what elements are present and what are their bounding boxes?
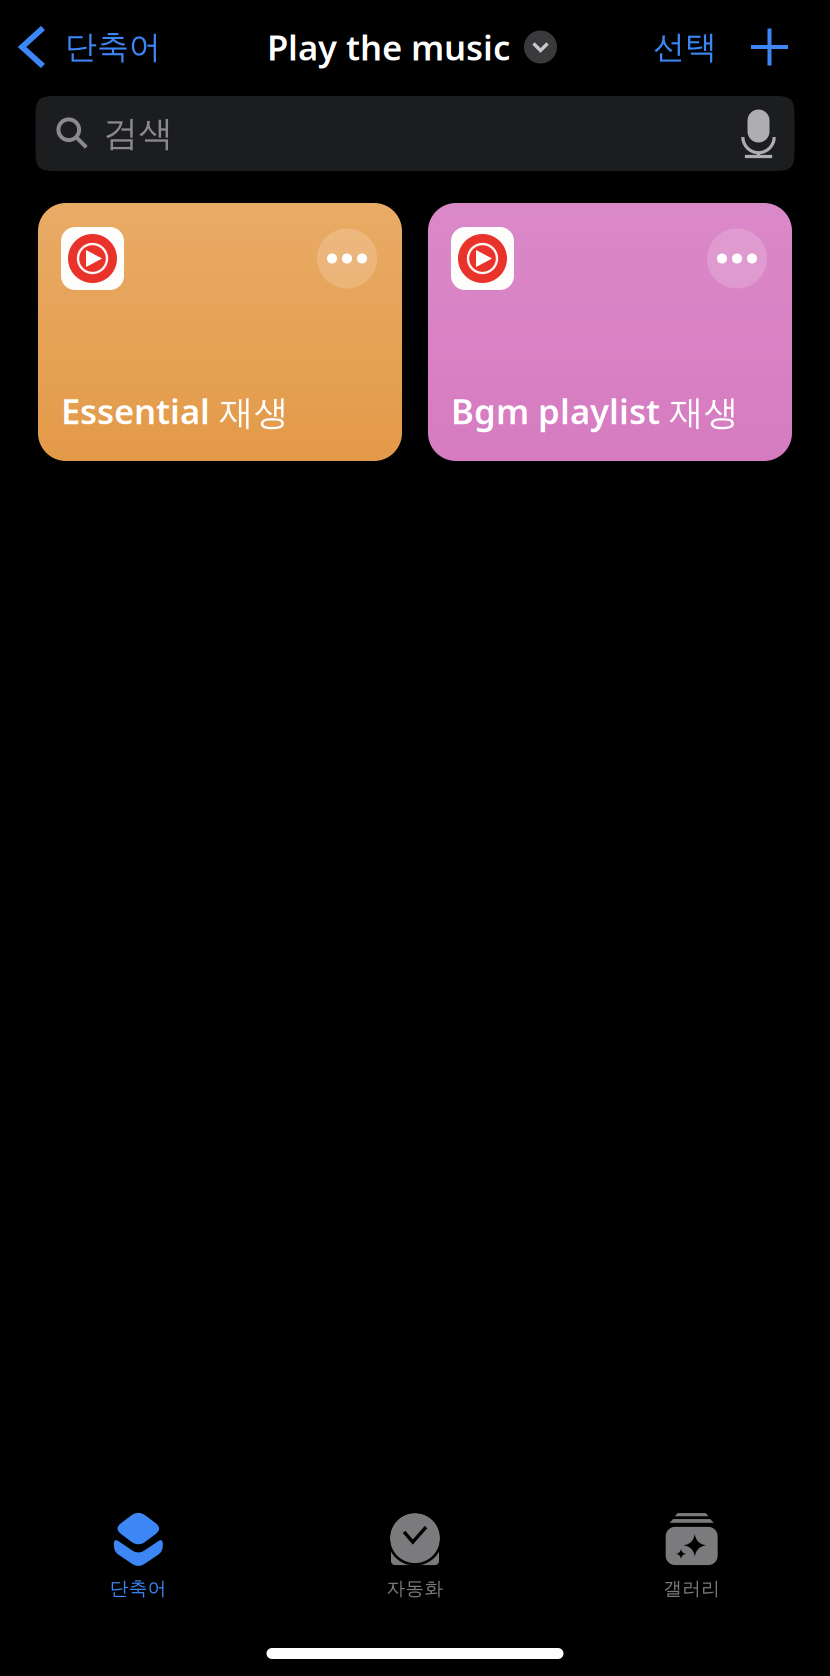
staticText: 검색 [103,112,173,155]
button[interactable]: Bgm playlist 재생 [428,203,792,461]
button[interactable]: 자동화 [277,1502,553,1606]
staticText: 선택 [653,27,717,67]
staticText: 단축어 [65,27,161,67]
button[interactable]: More options [317,228,377,288]
button[interactable]: 단축어 [0,1502,277,1606]
button[interactable]: Add shortcut [751,28,788,65]
button[interactable]: Essential 재생 [38,203,402,461]
button[interactable]: 단축어 [0,15,171,79]
staticText: Essential 재생 [61,388,289,434]
button[interactable]: More options [707,228,767,288]
staticText: Play the music [267,24,510,70]
button[interactable]: 선택 [653,15,717,79]
staticText: 단축어 [110,1577,167,1600]
button[interactable]: 갤러리 [553,1502,830,1606]
staticText: Bgm playlist 재생 [451,388,739,434]
staticText: 갤러리 [663,1577,720,1600]
button[interactable]: Shortcut options [524,30,557,63]
staticText: 자동화 [386,1577,443,1600]
